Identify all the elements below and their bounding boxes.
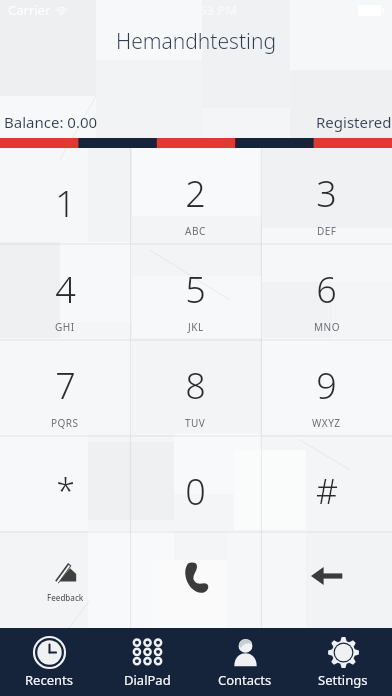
staticText: 3 (316, 169, 337, 218)
button[interactable]: * (0, 436, 130, 532)
staticText: Carrier (8, 1, 51, 19)
button[interactable]: 3 (261, 148, 392, 244)
staticText: MNO (314, 320, 340, 334)
staticText: TUV (185, 416, 206, 430)
staticText: 7 (55, 361, 76, 410)
button[interactable]: DialPad (98, 628, 196, 696)
button[interactable]: 6 (261, 244, 392, 340)
staticText: ABC (185, 224, 206, 238)
staticText: 6 (316, 265, 337, 314)
button[interactable]: 7 (0, 340, 130, 436)
button[interactable]: Contacts (196, 628, 294, 696)
staticText: Feedback (47, 592, 84, 603)
button[interactable]: Recents (0, 628, 98, 696)
staticText: Registered (316, 112, 392, 132)
staticText: Settings (318, 671, 368, 689)
staticText: # (316, 468, 338, 514)
staticText: * (56, 468, 75, 514)
staticText: 0 (185, 467, 206, 516)
staticText: Recents (25, 671, 73, 689)
staticText: Hemandhtesting (116, 27, 276, 56)
button[interactable]: 0 (130, 436, 261, 532)
staticText: 8 (185, 361, 206, 410)
staticText: 1:53 PM (188, 1, 238, 19)
button[interactable]: 1 (0, 148, 130, 244)
button[interactable]: 8 (130, 340, 261, 436)
button[interactable]: Backspace (261, 532, 392, 628)
staticText: DEF (317, 224, 337, 238)
button[interactable]: 9 (261, 340, 392, 436)
button[interactable]: 5 (130, 244, 261, 340)
button[interactable]: Feedback (0, 532, 130, 628)
button[interactable]: Call (130, 532, 261, 628)
button[interactable]: 2 (130, 148, 261, 244)
staticText: 9 (316, 361, 337, 410)
button[interactable]: 4 (0, 244, 130, 340)
staticText: 1 (55, 179, 76, 228)
staticText: PQRS (51, 416, 79, 430)
staticText: Contacts (218, 671, 272, 689)
staticText: 4 (55, 265, 76, 314)
staticText: 5 (185, 265, 206, 314)
button[interactable]: Settings (294, 628, 392, 696)
staticText: WXYZ (312, 416, 341, 430)
staticText: JKL (188, 320, 204, 334)
button[interactable]: # (261, 436, 392, 532)
staticText: GHI (55, 320, 75, 334)
staticText: DialPad (124, 671, 171, 689)
staticText: Balance: 0.00 (4, 112, 98, 132)
staticText: 2 (185, 169, 206, 218)
